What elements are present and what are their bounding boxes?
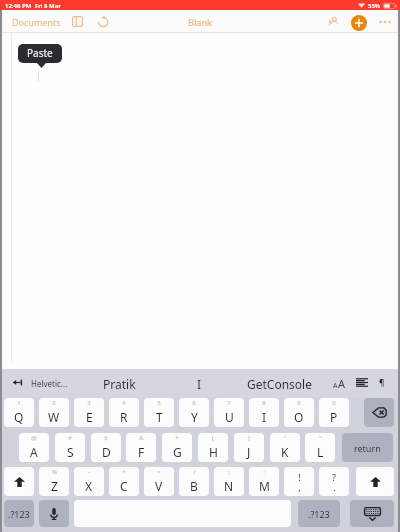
staticText: A	[338, 376, 346, 391]
button[interactable]: Helvetic...	[29, 376, 70, 391]
button[interactable]: &	[126, 433, 156, 462]
button[interactable]: Page layout	[68, 14, 86, 29]
button[interactable]: Hide keyboard	[350, 500, 394, 527]
staticText: @	[31, 434, 37, 442]
button[interactable]: return	[342, 433, 393, 462]
button[interactable]: Add	[351, 15, 367, 31]
staticText: X	[85, 478, 93, 494]
button[interactable]: !	[284, 467, 314, 496]
button[interactable]: Text size	[330, 374, 349, 393]
button[interactable]: 3	[74, 398, 104, 427]
staticText: N	[224, 478, 234, 494]
staticText: P	[330, 409, 338, 425]
staticText: M	[259, 478, 270, 494]
staticText: %	[52, 468, 57, 476]
button[interactable]: =	[144, 467, 174, 496]
button[interactable]: -	[74, 467, 104, 496]
staticText: Fri 8 Mar	[35, 2, 61, 10]
button[interactable]: 1	[4, 398, 34, 427]
button[interactable]: '	[270, 433, 300, 462]
button[interactable]: Documents	[9, 14, 64, 30]
button[interactable]: Shift	[4, 467, 34, 496]
staticText: S	[67, 444, 74, 460]
button[interactable]: More options	[375, 14, 394, 29]
button[interactable]: @	[19, 433, 49, 462]
button[interactable]: 7	[214, 398, 244, 427]
button[interactable]: $	[91, 433, 121, 462]
staticText: 6	[192, 399, 196, 407]
button[interactable]: %	[39, 467, 69, 496]
staticText: ;	[228, 468, 230, 476]
staticText: R	[120, 409, 128, 425]
button[interactable]: Paste	[18, 44, 62, 63]
button[interactable]: 6	[179, 398, 209, 427]
staticText: =	[157, 468, 161, 476]
button[interactable]: *	[162, 433, 192, 462]
button[interactable]: Undo	[94, 14, 112, 29]
staticText: 0	[332, 399, 336, 407]
button[interactable]: Shift	[356, 467, 394, 496]
staticText: #	[68, 434, 72, 442]
staticText: O	[294, 409, 304, 425]
button[interactable]: (	[198, 433, 228, 462]
staticText: 8	[262, 399, 266, 407]
button[interactable]: /	[179, 467, 209, 496]
button[interactable]: .?123	[4, 500, 34, 527]
staticText: (	[212, 434, 214, 442]
staticText: ?	[332, 471, 336, 483]
staticText: A	[30, 444, 38, 460]
staticText: Paste	[27, 46, 53, 60]
staticText: Q	[14, 409, 24, 425]
button[interactable]: )	[234, 433, 264, 462]
button[interactable]: Alignment	[353, 374, 370, 391]
staticText: +	[122, 468, 126, 476]
button[interactable]: .?123	[298, 500, 340, 527]
staticText: B	[190, 478, 198, 494]
staticText: )	[248, 434, 250, 442]
button[interactable]: #	[55, 433, 85, 462]
staticText: :	[263, 468, 265, 476]
button[interactable]: 9	[284, 398, 314, 427]
staticText: $	[104, 434, 108, 442]
staticText: '	[284, 434, 286, 442]
staticText: F	[138, 444, 145, 460]
button[interactable]: Dictation	[39, 500, 69, 527]
button[interactable]: 2	[39, 398, 69, 427]
button[interactable]: :	[249, 467, 279, 496]
button[interactable]: I	[195, 374, 204, 394]
button[interactable]: Pratik	[101, 374, 138, 394]
staticText: Blank	[188, 16, 213, 28]
button[interactable]: +	[109, 467, 139, 496]
staticText: H	[209, 444, 218, 460]
staticText: 1	[17, 399, 21, 407]
staticText: E	[86, 409, 93, 425]
button[interactable]: 5	[144, 398, 174, 427]
button[interactable]: ?	[319, 467, 349, 496]
button[interactable]: 4	[109, 398, 139, 427]
staticText: D	[102, 444, 111, 460]
button[interactable]: Backspace	[364, 398, 394, 427]
staticText: 2	[52, 399, 56, 407]
button[interactable]: "	[305, 433, 335, 462]
staticText: Helvetic...	[31, 378, 68, 389]
staticText: GetConsole	[247, 376, 312, 392]
button[interactable]: Paragraph marks	[374, 374, 390, 390]
button[interactable]: 0	[319, 398, 349, 427]
button[interactable]: 8	[249, 398, 279, 427]
staticText: A	[333, 381, 338, 391]
button[interactable]: ;	[214, 467, 244, 496]
staticText: *	[175, 434, 179, 442]
staticText: I	[197, 376, 202, 392]
staticText: G	[173, 444, 182, 460]
staticText: L	[317, 444, 324, 460]
button[interactable]: GetConsole	[245, 374, 314, 394]
staticText: "	[319, 434, 322, 442]
staticText: 3	[87, 399, 91, 407]
staticText: !	[298, 471, 301, 483]
staticText: 12:46 PM	[5, 2, 32, 10]
staticText: ,	[298, 481, 301, 493]
staticText: I	[262, 409, 267, 425]
button[interactable]: Collaborate	[324, 14, 341, 29]
staticText: K	[281, 444, 289, 460]
